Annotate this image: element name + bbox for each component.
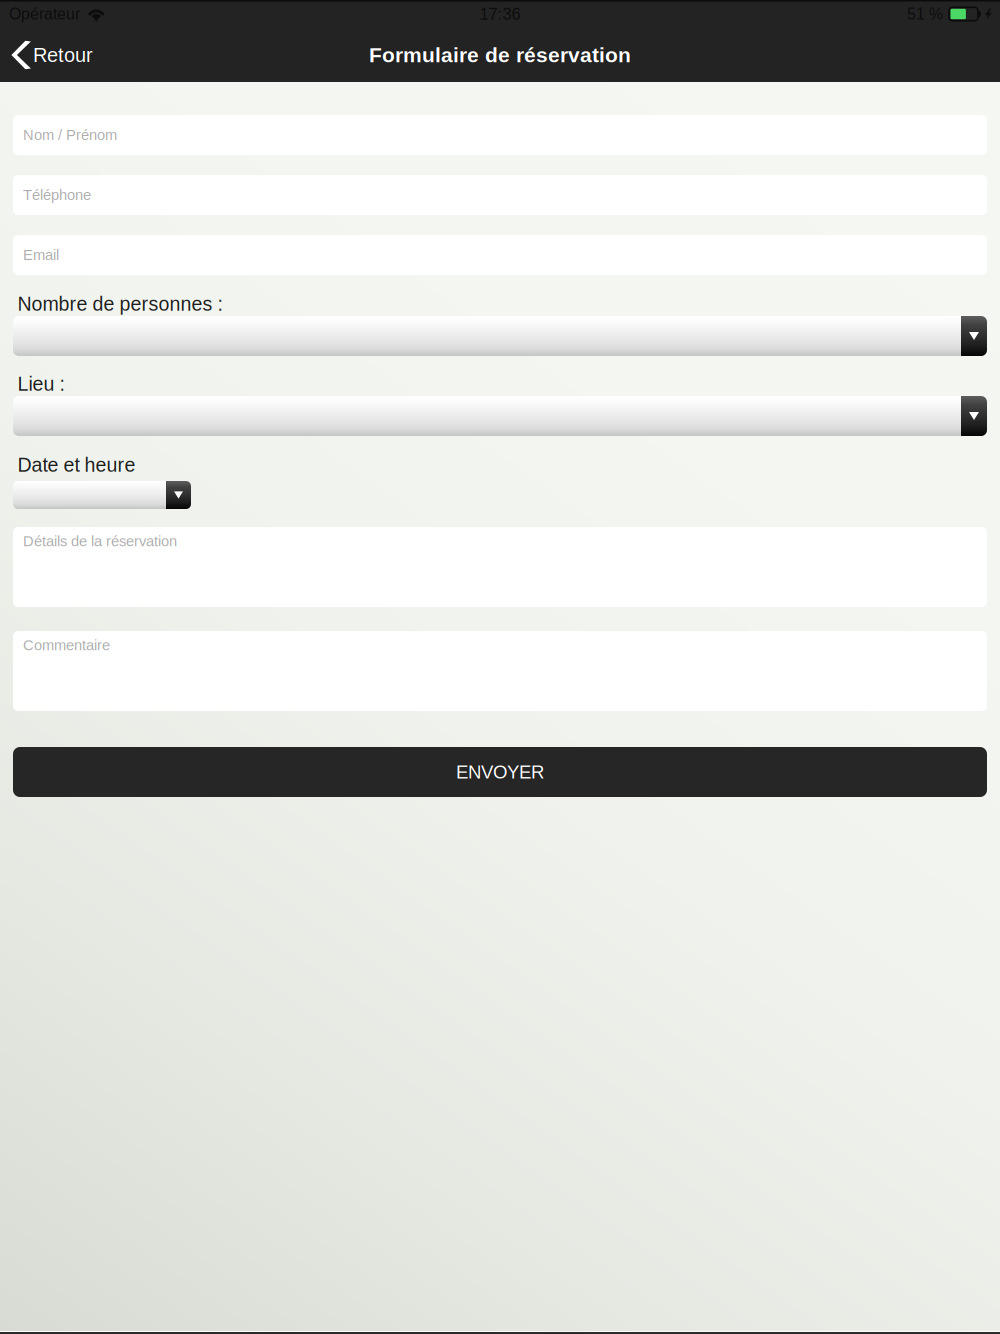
button[interactable]: ENVOYER — [13, 747, 987, 797]
button[interactable]: Email — [13, 235, 987, 275]
button[interactable]: Détails de la réservation — [13, 527, 987, 607]
staticText: Lieu : — [17, 373, 64, 395]
staticText: ENVOYER — [456, 762, 544, 782]
staticText: 51 % — [907, 5, 943, 23]
staticText: Nombre de personnes : — [17, 293, 222, 315]
staticText: Téléphone — [23, 187, 91, 203]
staticText: Date et heure — [17, 454, 135, 476]
button[interactable]: Téléphone — [13, 175, 987, 215]
staticText: Nom / Prénom — [23, 127, 117, 143]
staticText: Email — [23, 247, 59, 263]
button[interactable]: Lieu — [13, 396, 987, 436]
staticText: Formulaire de réservation — [369, 43, 631, 67]
button[interactable]: Commentaire — [13, 631, 987, 711]
staticText: Retour — [33, 44, 93, 66]
button[interactable]: Nombre de personnes — [13, 316, 987, 356]
button[interactable]: Retour — [0, 28, 105, 82]
staticText: Détails de la réservation — [23, 533, 177, 549]
staticText: Opérateur — [9, 5, 80, 23]
staticText: 17:36 — [479, 5, 520, 23]
button[interactable]: Date et heure — [13, 481, 191, 509]
button[interactable]: Nom / Prénom — [13, 115, 987, 155]
staticText: Commentaire — [23, 637, 110, 653]
